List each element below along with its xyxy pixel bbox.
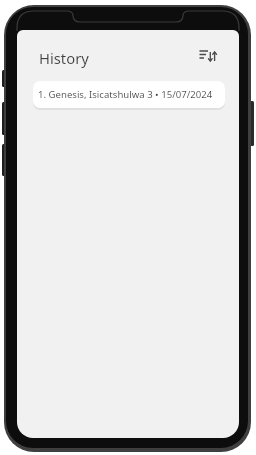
staticText: History [39, 48, 89, 68]
button[interactable] [198, 47, 222, 65]
staticText: 1. Genesis, Isicatshulwa 3 • 15/07/2024 [38, 88, 213, 101]
button[interactable]: 1. Genesis, Isicatshulwa 3 • 15/07/2024 [33, 81, 225, 108]
